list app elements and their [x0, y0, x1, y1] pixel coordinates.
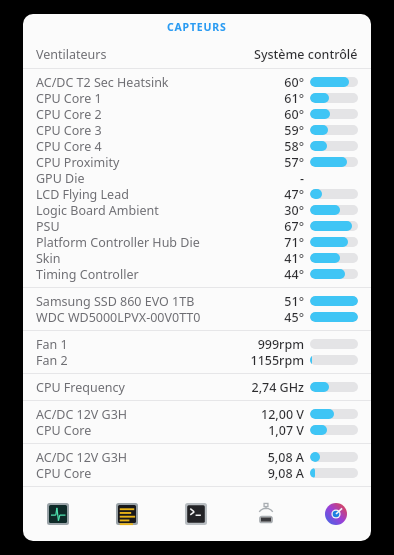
- staticText: Logic Board Ambient: [36, 202, 159, 218]
- button[interactable]: Skin: [23, 250, 371, 266]
- button[interactable]: LCD Flying Lead: [23, 186, 371, 202]
- staticText: 1155rpm: [250, 352, 304, 368]
- staticText: Fan 1: [36, 336, 68, 352]
- staticText: 59°: [284, 122, 304, 138]
- staticText: AC/DC 12V G3H: [36, 449, 128, 465]
- staticText: 57°: [284, 154, 304, 170]
- staticText: CPU Core: [36, 422, 92, 438]
- button[interactable]: AC/DC T2 Sec Heatsink: [23, 74, 371, 90]
- button[interactable]: Console log: [92, 487, 161, 541]
- button[interactable]: CPU Core 3: [23, 122, 371, 138]
- button[interactable]: AC/DC 12V G3H: [23, 449, 371, 465]
- staticText: CPU Proximity: [36, 154, 120, 170]
- staticText: CPU Core 2: [36, 106, 102, 122]
- staticText: Système contrôlé: [254, 46, 358, 63]
- button[interactable]: GPU Die: [23, 170, 371, 186]
- button[interactable]: CPU Core 2: [23, 106, 371, 122]
- button[interactable]: Fan 2: [23, 352, 371, 368]
- button[interactable]: CPU Core: [23, 422, 371, 438]
- staticText: GPU Die: [36, 170, 85, 186]
- button[interactable]: CPU Core: [23, 465, 371, 481]
- staticText: CPU Frequency: [36, 379, 125, 395]
- staticText: -: [299, 170, 304, 186]
- button[interactable]: Logic Board Ambient: [23, 202, 371, 218]
- staticText: 61°: [284, 90, 304, 106]
- button[interactable]: Platform Controller Hub Die: [23, 234, 371, 250]
- button[interactable]: Timing Controller: [23, 266, 371, 282]
- button[interactable]: WDC WD5000LPVX-00V0TT0: [23, 309, 371, 325]
- staticText: LCD Flying Lead: [36, 186, 129, 202]
- staticText: Samsung SSD 860 EVO 1TB: [36, 293, 195, 309]
- button[interactable]: Terminal: [161, 487, 231, 541]
- staticText: 44°: [284, 266, 304, 282]
- staticText: Platform Controller Hub Die: [36, 234, 200, 250]
- staticText: CAPTEURS: [167, 20, 227, 34]
- button[interactable]: Samsung SSD 860 EVO 1TB: [23, 293, 371, 309]
- button[interactable]: CPU Proximity: [23, 154, 371, 170]
- staticText: 30°: [284, 202, 304, 218]
- button[interactable]: CPU Core 1: [23, 90, 371, 106]
- staticText: 60°: [284, 106, 304, 122]
- staticText: CPU Core: [36, 465, 92, 481]
- staticText: 45°: [284, 309, 304, 325]
- button[interactable]: CPU Core 4: [23, 138, 371, 154]
- staticText: 71°: [284, 234, 304, 250]
- staticText: WDC WD5000LPVX-00V0TT0: [36, 309, 201, 325]
- staticText: 2,74 GHz: [251, 379, 304, 395]
- staticText: PSU: [36, 218, 60, 234]
- staticText: Timing Controller: [36, 266, 139, 282]
- button[interactable]: Activity Monitor: [23, 487, 92, 541]
- staticText: Skin: [36, 250, 61, 266]
- staticText: 9,08 A: [267, 465, 304, 481]
- staticText: 47°: [284, 186, 304, 202]
- staticText: 51°: [284, 293, 304, 309]
- staticText: CPU Core 3: [36, 122, 102, 138]
- staticText: 41°: [284, 250, 304, 266]
- staticText: 58°: [284, 138, 304, 154]
- staticText: 1,07 V: [268, 422, 304, 438]
- staticText: 12,00 V: [261, 406, 304, 422]
- staticText: Ventilateurs: [36, 46, 107, 63]
- staticText: 5,08 A: [267, 449, 304, 465]
- button[interactable]: CPU Frequency: [23, 379, 371, 395]
- staticText: 67°: [284, 218, 304, 234]
- staticText: 60°: [284, 74, 304, 90]
- button[interactable]: Printer: [231, 487, 301, 541]
- staticText: 999rpm: [257, 336, 304, 352]
- button[interactable]: PSU: [23, 218, 371, 234]
- staticText: AC/DC T2 Sec Heatsink: [36, 74, 169, 90]
- staticText: AC/DC 12V G3H: [36, 406, 128, 422]
- staticText: CPU Core 4: [36, 138, 102, 154]
- button[interactable]: AC/DC 12V G3H: [23, 406, 371, 422]
- button[interactable]: Fan 1: [23, 336, 371, 352]
- staticText: CPU Core 1: [36, 90, 102, 106]
- staticText: Fan 2: [36, 352, 68, 368]
- button[interactable]: Browser: [301, 487, 371, 541]
